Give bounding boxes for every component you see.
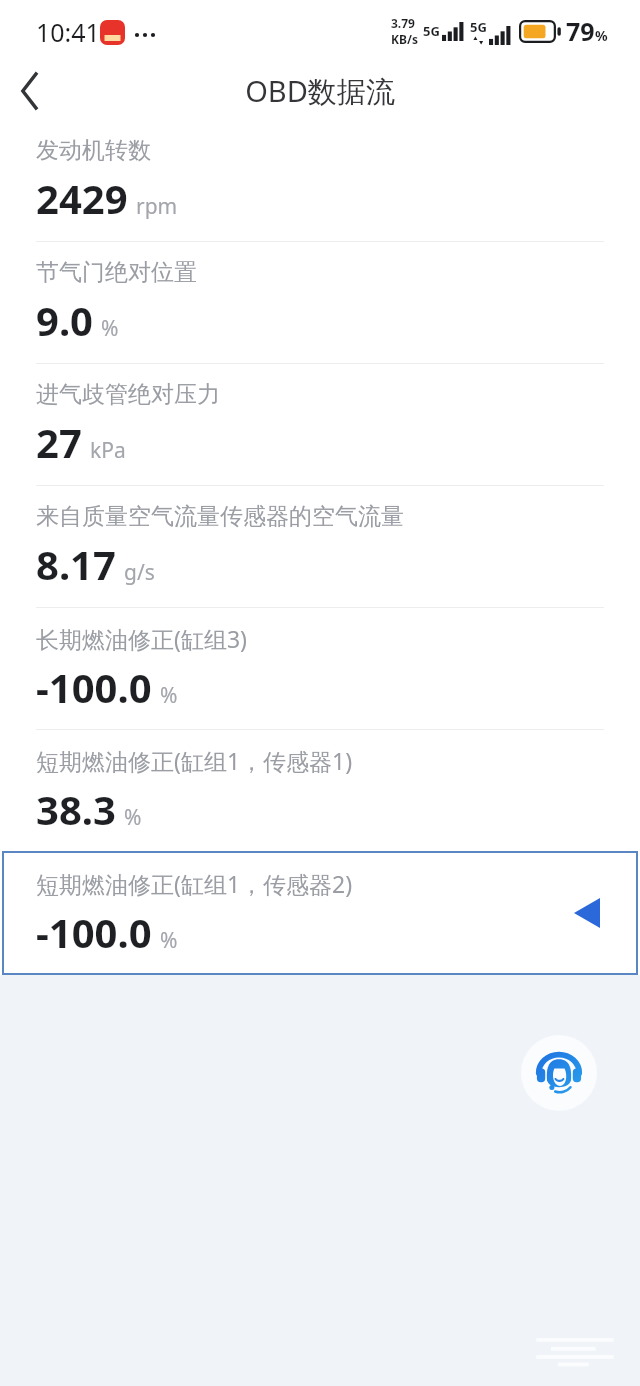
- button[interactable]: 来自质量空气流量传感器的空气流量: [0, 486, 640, 607]
- staticText: %: [124, 803, 142, 832]
- staticText: 10:41: [36, 15, 100, 49]
- staticText: kPa: [90, 436, 126, 465]
- button[interactable]: Back: [0, 62, 60, 120]
- staticText: 8.17: [36, 537, 116, 591]
- button[interactable]: 进气歧管绝对压力: [0, 364, 640, 485]
- staticText: 来自质量空气流量传感器的空气流量: [36, 502, 404, 531]
- button[interactable]: 短期燃油修正(缸组1，传感器1): [0, 730, 640, 851]
- staticText: 27: [36, 415, 82, 469]
- staticText: 9.0: [36, 293, 93, 347]
- staticText: 38.3: [36, 782, 116, 836]
- staticText: 3.79: [391, 15, 415, 31]
- staticText: %: [160, 681, 178, 710]
- staticText: 短期燃油修正(缸组1，传感器2): [36, 868, 353, 899]
- staticText: KB/s: [391, 31, 418, 47]
- staticText: %: [595, 26, 608, 45]
- staticText: 发动机转数: [36, 136, 151, 165]
- staticText: -100.0: [36, 905, 152, 959]
- button[interactable]: 短期燃油修正(缸组1，传感器2): [2, 851, 638, 975]
- staticText: 节气门绝对位置: [36, 258, 197, 287]
- staticText: -100.0: [36, 660, 152, 714]
- staticText: 5G: [470, 18, 487, 36]
- staticText: 进气歧管绝对压力: [36, 380, 220, 409]
- button[interactable]: 长期燃油修正(缸组3): [0, 608, 640, 729]
- staticText: 短期燃油修正(缸组1，传感器1): [36, 745, 353, 776]
- staticText: g/s: [124, 558, 155, 587]
- staticText: rpm: [136, 192, 178, 221]
- staticText: %: [160, 926, 178, 955]
- staticText: 79: [566, 14, 595, 48]
- staticText: 5G: [423, 22, 440, 40]
- staticText: OBD数据流: [245, 71, 395, 111]
- staticText: 2429: [36, 171, 128, 225]
- button[interactable]: 节气门绝对位置: [0, 242, 640, 363]
- staticText: 长期燃油修正(缸组3): [36, 623, 247, 654]
- button[interactable]: 发动机转数: [0, 120, 640, 241]
- button[interactable]: Customer support: [521, 1035, 597, 1111]
- staticText: %: [101, 314, 119, 343]
